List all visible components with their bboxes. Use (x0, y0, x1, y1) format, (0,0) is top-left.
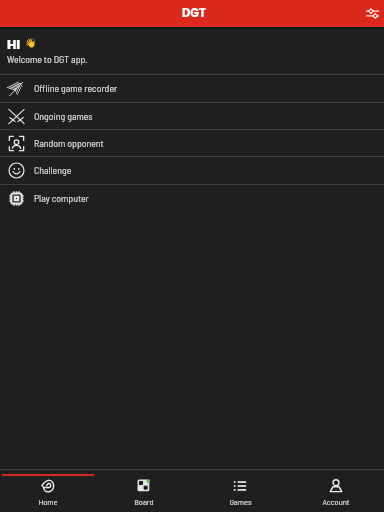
button[interactable]: Games (192, 476, 288, 512)
button[interactable]: Home (0, 476, 96, 512)
button[interactable]: Offline game recorder (0, 75, 384, 101)
staticText: Play computer (34, 192, 89, 204)
staticText: 👋 (25, 38, 37, 49)
staticText: Welcome to DGT app. (7, 53, 88, 65)
staticText: Games (229, 496, 252, 506)
staticText: Board (134, 496, 154, 506)
staticText: Offline game recorder (34, 82, 118, 94)
staticText: DGT (182, 5, 206, 21)
staticText: Challenge (34, 164, 72, 176)
staticText: HI (7, 36, 21, 53)
button[interactable]: Ongoing games (0, 103, 384, 129)
staticText: Home (38, 496, 58, 506)
button[interactable]: Random opponent (0, 130, 384, 156)
button[interactable]: Settings (365, 6, 380, 21)
staticText: Account (322, 496, 350, 506)
button[interactable]: Board (96, 476, 192, 512)
staticText: Ongoing games (34, 110, 93, 122)
button[interactable]: Account (288, 476, 384, 512)
button[interactable]: Challenge (0, 157, 384, 183)
staticText: Random opponent (34, 137, 104, 149)
button[interactable]: Play computer (0, 185, 384, 211)
